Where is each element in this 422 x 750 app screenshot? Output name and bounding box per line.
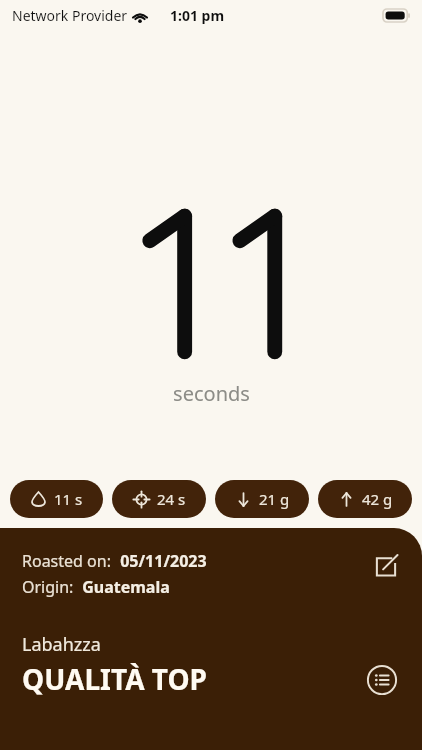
button[interactable]: Recipe list [360,658,404,702]
staticText: 1:01 pm [170,6,225,25]
staticText: Network Provider [12,6,128,25]
staticText: 24 s [157,489,186,509]
staticText: Labahzza [22,632,101,657]
button[interactable]: 11 s [10,480,103,518]
staticText: Roasted on: [22,550,116,572]
staticText: QUALITÀ TOP [22,660,207,698]
staticText: 11 s [54,489,83,509]
staticText: 42 g [362,489,393,509]
staticText: seconds [173,380,250,407]
button[interactable]: Edit bean details [366,546,406,586]
staticText: Origin: [22,576,78,598]
staticText: 05/11/2023 [116,550,207,572]
button[interactable]: 42 g [318,480,412,518]
button[interactable]: 24 s [112,480,206,518]
button[interactable]: 21 g [215,480,309,518]
staticText: Guatemala [78,576,170,598]
staticText: 21 g [259,489,290,509]
